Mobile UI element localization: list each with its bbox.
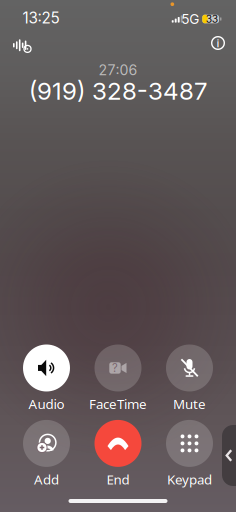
staticText: 5G	[181, 11, 199, 27]
button[interactable]: Keypad	[154, 420, 225, 488]
button[interactable]: Call info	[203, 28, 233, 58]
staticText: End	[106, 470, 129, 488]
staticText: Mute	[173, 395, 206, 413]
button[interactable]: End	[82, 420, 154, 488]
staticText: Keypad	[167, 470, 212, 488]
staticText: FaceTime	[89, 395, 147, 413]
button[interactable]: Audio	[11, 345, 82, 413]
button[interactable]: Show contacts	[222, 425, 236, 486]
button[interactable]: Mute	[154, 345, 225, 413]
staticText: Add	[34, 470, 59, 488]
staticText: i	[216, 36, 219, 50]
staticText: 27:06	[98, 61, 137, 78]
button[interactable]: Add	[11, 420, 82, 488]
staticText: (919) 328-3487	[29, 76, 207, 106]
staticText: 13:25	[22, 9, 59, 27]
staticText: Audio	[28, 395, 64, 413]
button[interactable]: ?	[82, 345, 154, 413]
staticText: ?	[112, 361, 118, 375]
staticText: 33	[206, 13, 218, 25]
